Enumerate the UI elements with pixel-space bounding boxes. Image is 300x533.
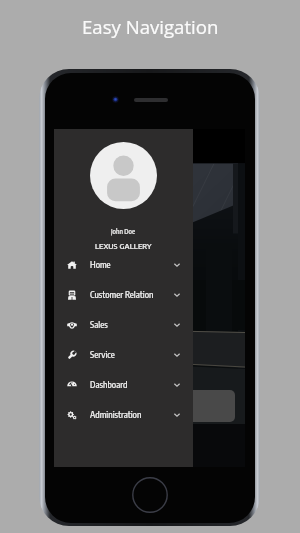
button[interactable]: Customer Relation [54,280,193,310]
staticText: Customer Relation [90,290,154,300]
staticText: LEXUS GALLERY [95,241,152,251]
button[interactable]: Service [54,340,193,370]
staticText: Home [90,260,111,270]
button[interactable]: Administration [54,400,193,430]
staticText: John Doe [111,227,136,235]
button[interactable]: Dashboard [54,370,193,400]
staticText: Service [90,350,115,360]
button[interactable]: Home [54,250,193,280]
button[interactable]: Sales [54,310,193,340]
staticText: Administration [90,410,142,420]
staticText: Sales [90,320,108,330]
staticText: Dashboard [90,380,128,390]
staticText: Easy Navigation [82,14,219,39]
